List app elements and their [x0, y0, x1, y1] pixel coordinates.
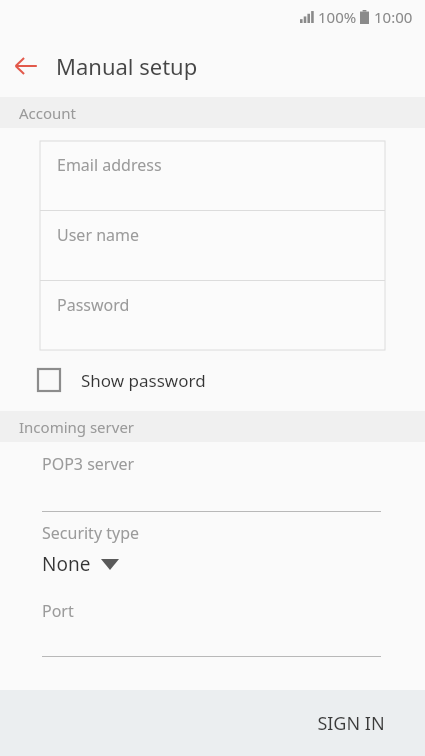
staticText: Security type [42, 522, 140, 544]
staticText: Email address [57, 154, 162, 176]
staticText: SIGN IN [317, 711, 385, 736]
button[interactable]: Email address [40, 141, 385, 210]
staticText: POP3 server [42, 453, 135, 475]
staticText: 10:00 [374, 7, 413, 27]
staticText: Incoming server [19, 417, 135, 437]
staticText: User name [57, 224, 140, 246]
button[interactable]: Show password [0, 360, 425, 400]
button[interactable]: Security type [0, 512, 425, 589]
staticText: Account [19, 103, 77, 123]
staticText: Show password [81, 369, 206, 392]
button[interactable]: User name [40, 211, 385, 280]
staticText: Password [57, 294, 130, 316]
staticText: Port [42, 600, 74, 622]
button[interactable]: Port [0, 589, 425, 657]
button[interactable]: Password [40, 281, 385, 350]
staticText: Manual setup [56, 51, 198, 81]
staticText: None [42, 551, 91, 577]
staticText: 100% [318, 7, 357, 27]
button[interactable]: SIGN IN [303, 701, 399, 746]
button[interactable]: POP3 server [0, 442, 425, 512]
button[interactable]: Back [0, 40, 52, 92]
